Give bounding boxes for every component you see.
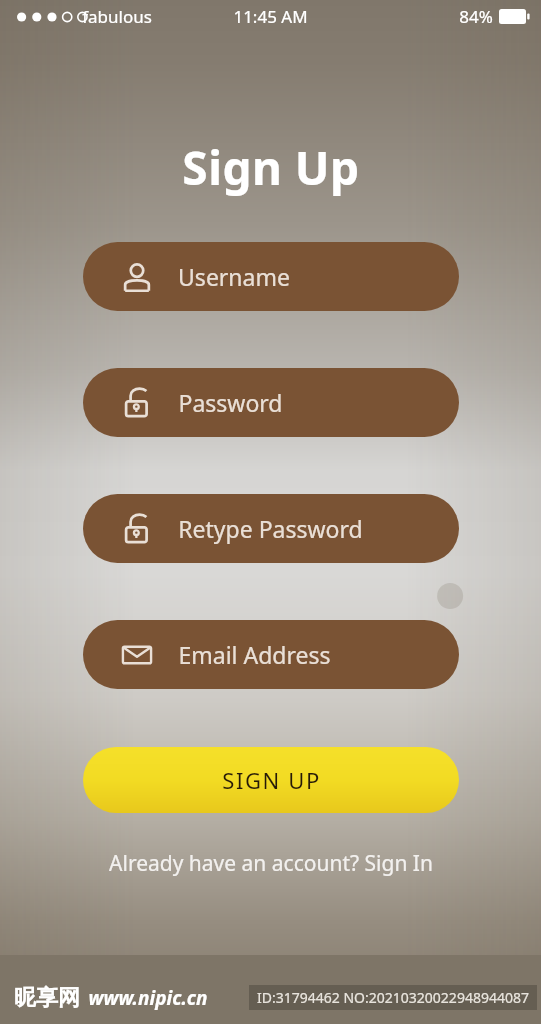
button[interactable]: SIGN UP: [83, 747, 459, 813]
staticText: Password: [178, 387, 283, 418]
staticText: SIGN UP: [222, 765, 321, 795]
staticText: 昵享网: [14, 984, 80, 1012]
button[interactable]: Retype Password: [83, 494, 459, 563]
button[interactable]: Password: [83, 368, 459, 437]
staticText: Sign Up: [182, 136, 360, 199]
button[interactable]: Already have an account? Sign In: [99, 845, 443, 882]
staticText: www.nipic.cn: [88, 985, 208, 1011]
button[interactable]: Email Address: [83, 620, 459, 689]
staticText: 11:45 AM: [233, 5, 308, 28]
button[interactable]: Username: [83, 242, 459, 311]
staticText: fabulous: [82, 5, 152, 28]
staticText: Email Address: [178, 639, 331, 670]
staticText: Retype Password: [178, 513, 363, 544]
staticText: Username: [178, 261, 290, 292]
staticText: Already have an account? Sign In: [109, 849, 433, 878]
staticText: 84%: [459, 5, 493, 28]
staticText: ID:31794462 NO:20210320022948944087: [257, 988, 529, 1007]
